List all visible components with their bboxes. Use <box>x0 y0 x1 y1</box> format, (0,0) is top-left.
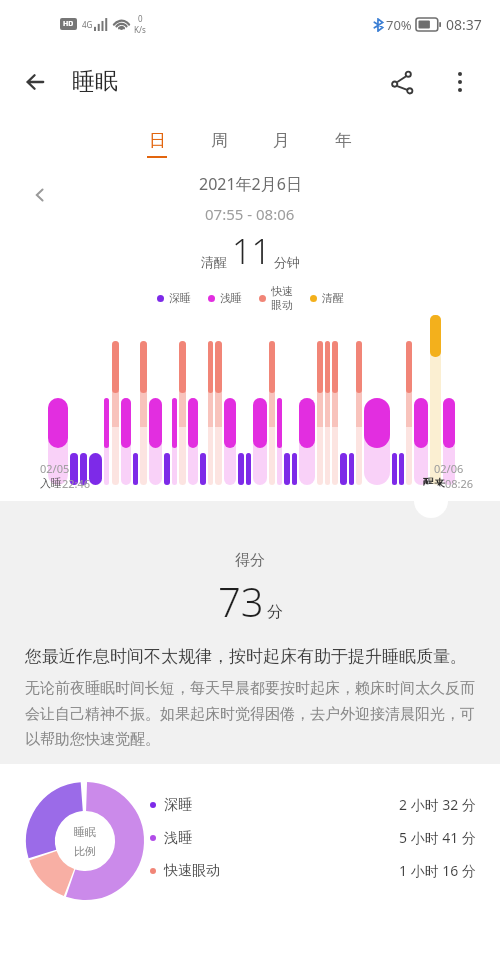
staticText: 分钟 <box>274 254 300 270</box>
staticText: 浅睡 <box>164 829 192 847</box>
staticText: 睡眠 <box>72 67 118 96</box>
staticText: 醒来 <box>423 476 445 490</box>
staticText: 快速 <box>271 284 293 298</box>
staticText: 日 <box>149 130 166 151</box>
staticText: 2021年2月6日 <box>199 173 302 195</box>
staticText: 分 <box>267 602 283 622</box>
staticText: 73 <box>218 574 264 628</box>
staticText: 08:26 <box>445 476 474 491</box>
staticText: 得分 <box>0 551 500 570</box>
staticText: 眼动 <box>271 298 293 312</box>
staticText: 70% <box>386 16 412 34</box>
staticText: 02/06 <box>434 461 464 476</box>
staticText: 睡眠 <box>74 825 96 839</box>
staticText: 无论前夜睡眠时间长短，每天早晨都要按时起床，赖床时间太久反而会让自己精神不振。如… <box>25 679 475 748</box>
button[interactable]: 月 <box>250 115 312 173</box>
staticText: 月 <box>273 130 290 151</box>
staticText: 清醒 <box>201 254 227 270</box>
staticText: 深睡 <box>164 796 192 814</box>
button[interactable]: 周 <box>188 115 250 173</box>
staticText: 清醒 <box>322 291 344 305</box>
staticText: 5 小时 41 分 <box>399 828 476 847</box>
staticText: 您最近作息时间不太规律，按时起床有助于提升睡眠质量。 <box>25 646 475 667</box>
staticText: K/s <box>134 24 146 35</box>
staticText: 22:46 <box>62 476 91 491</box>
button[interactable]: Share <box>380 60 424 104</box>
staticText: 比例 <box>74 844 96 858</box>
button[interactable]: 日 <box>126 115 188 173</box>
staticText: 0 <box>138 13 143 24</box>
staticText: 深睡 <box>169 291 191 305</box>
staticText: 入睡 <box>40 476 62 490</box>
staticText: 快速眼动 <box>164 862 220 880</box>
staticText: 02/05 <box>40 461 70 476</box>
button[interactable]: More options <box>438 60 482 104</box>
staticText: 浅睡 <box>220 291 242 305</box>
button[interactable]: 年 <box>312 115 374 173</box>
staticText: 2 小时 32 分 <box>399 795 476 814</box>
staticText: 08:37 <box>446 15 482 34</box>
staticText: HD <box>63 19 74 29</box>
staticText: 11 <box>232 228 271 274</box>
staticText: 年 <box>335 130 352 151</box>
button[interactable]: Back <box>14 60 58 104</box>
staticText: 周 <box>211 130 228 151</box>
staticText: 4G <box>82 19 93 30</box>
button[interactable]: Previous day <box>22 177 58 213</box>
staticText: 1 小时 16 分 <box>399 861 476 880</box>
staticText: 07:55 - 08:06 <box>205 204 295 224</box>
